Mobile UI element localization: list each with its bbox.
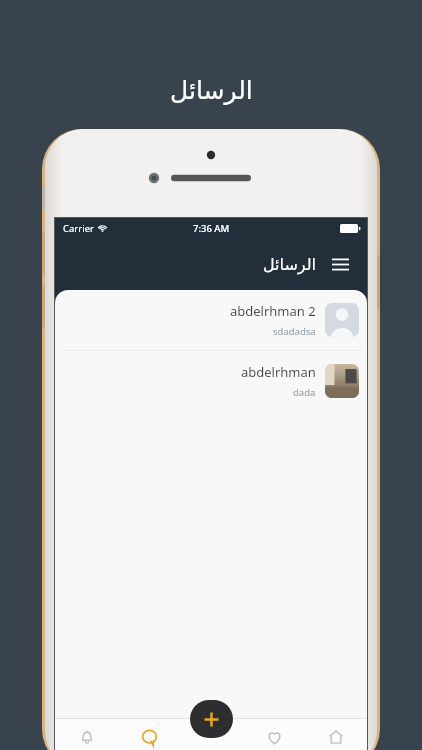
- staticText: الرسائل: [263, 255, 316, 274]
- staticText: Carrier: [63, 222, 94, 235]
- button[interactable]: Menu: [327, 251, 353, 277]
- button[interactable]: abdelrhman 2: [55, 290, 367, 350]
- button[interactable]: New message: [190, 700, 233, 738]
- staticText: dada: [293, 386, 316, 399]
- button[interactable]: Notifications: [55, 718, 118, 750]
- button[interactable]: Favorites: [243, 718, 305, 750]
- button[interactable]: abdelrhman: [55, 351, 367, 411]
- button[interactable]: Messages: [118, 718, 181, 750]
- staticText: sdadadsa: [273, 325, 316, 338]
- button[interactable]: Home: [305, 718, 367, 750]
- staticText: abdelrhman: [241, 363, 316, 381]
- staticText: abdelrhman 2: [230, 302, 316, 320]
- staticText: 7:36 AM: [193, 222, 230, 235]
- staticText: الرسائل: [170, 76, 253, 105]
